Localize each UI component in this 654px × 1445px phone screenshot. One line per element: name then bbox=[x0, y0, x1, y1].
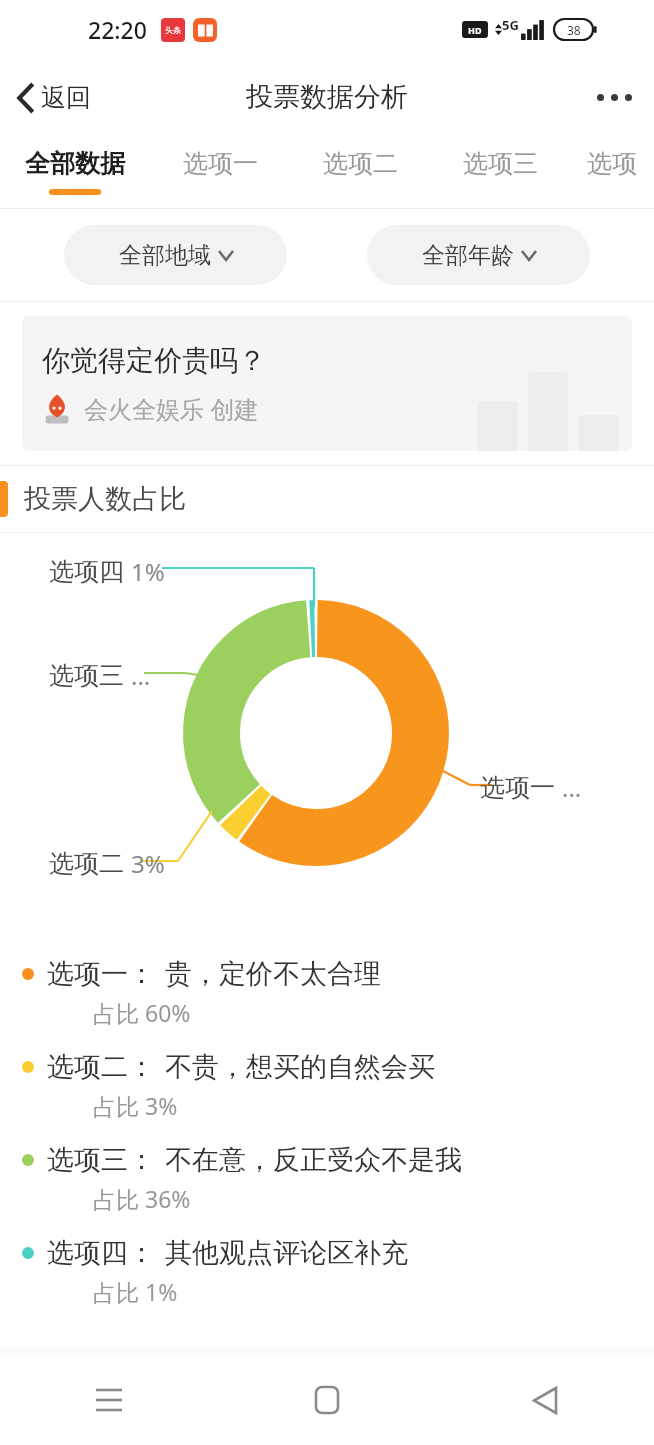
button[interactable]: 选项二 bbox=[290, 136, 430, 208]
staticText: 选项三 bbox=[463, 148, 538, 179]
staticText: 占比 1% bbox=[93, 1276, 178, 1307]
button[interactable]: More options bbox=[575, 78, 654, 117]
staticText: 全部地域 bbox=[119, 241, 211, 270]
staticText: ... bbox=[131, 659, 151, 692]
staticText: 5G bbox=[502, 16, 519, 34]
button[interactable]: 选项一 bbox=[150, 136, 290, 208]
button[interactable]: 全部地域 bbox=[64, 225, 287, 285]
staticText: 选项一 bbox=[183, 148, 258, 179]
staticText: 全部年龄 bbox=[422, 241, 514, 270]
staticText: ... bbox=[562, 771, 582, 804]
button[interactable]: 选项 bbox=[570, 136, 654, 208]
button[interactable]: 选项四： bbox=[0, 1226, 654, 1319]
staticText: 会火全娱乐 创建 bbox=[84, 392, 259, 425]
staticText: 选项 bbox=[587, 148, 637, 179]
staticText: 选项四： bbox=[47, 1236, 155, 1270]
staticText: 返回 bbox=[41, 82, 91, 113]
staticText: 选项二： bbox=[47, 1050, 155, 1084]
staticText: 选项二 bbox=[49, 848, 124, 879]
button[interactable]: 选项三： bbox=[0, 1133, 654, 1226]
staticText: 占比 60% bbox=[93, 997, 191, 1028]
button[interactable]: 全部年龄 bbox=[367, 225, 590, 285]
button[interactable]: 选项三 bbox=[430, 136, 570, 208]
staticText: 不在意，反正受众不是我 bbox=[165, 1143, 462, 1177]
staticText: 22:20 bbox=[88, 14, 147, 45]
staticText: 投票人数占比 bbox=[24, 482, 186, 516]
staticText: 选项三： bbox=[47, 1143, 155, 1177]
staticText: 贵，定价不太合理 bbox=[165, 957, 381, 991]
staticText: 选项一： bbox=[47, 957, 155, 991]
staticText: 头条 bbox=[165, 25, 181, 35]
staticText: 投票数据分析 bbox=[246, 80, 408, 114]
staticText: 不贵，想买的自然会买 bbox=[165, 1050, 435, 1084]
button[interactable]: 全部数据 bbox=[0, 136, 150, 208]
button[interactable]: Recent apps bbox=[0, 1355, 218, 1445]
staticText: 占比 36% bbox=[93, 1183, 191, 1214]
button[interactable]: 选项一： bbox=[0, 947, 654, 1040]
staticText: 占比 3% bbox=[93, 1090, 178, 1121]
staticText: 全部数据 bbox=[25, 148, 125, 179]
staticText: 选项三 bbox=[49, 660, 124, 691]
staticText: 3% bbox=[131, 847, 165, 880]
staticText: 选项一 bbox=[480, 772, 555, 803]
staticText: HD bbox=[468, 24, 482, 36]
button[interactable]: 选项二： bbox=[0, 1040, 654, 1133]
button[interactable]: 你觉得定价贵吗？ bbox=[22, 316, 632, 451]
button[interactable]: 返回 bbox=[0, 74, 105, 121]
button[interactable]: Back bbox=[436, 1355, 654, 1445]
staticText: 选项二 bbox=[323, 148, 398, 179]
button[interactable]: Home bbox=[218, 1355, 436, 1445]
staticText: 其他观点评论区补充 bbox=[165, 1236, 408, 1270]
staticText: 1% bbox=[131, 555, 165, 588]
staticText: 你觉得定价贵吗？ bbox=[42, 343, 266, 378]
staticText: 38 bbox=[567, 22, 581, 38]
staticText: 选项四 bbox=[49, 556, 124, 587]
